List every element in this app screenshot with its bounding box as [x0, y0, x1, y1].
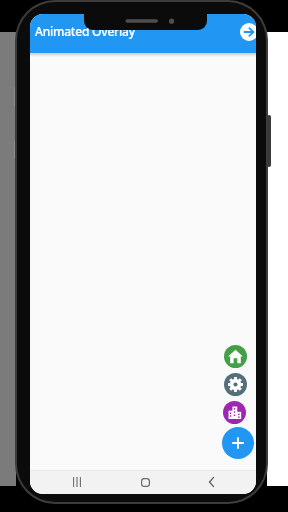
button[interactable]	[223, 401, 246, 424]
button[interactable]	[135, 472, 155, 492]
button[interactable]	[224, 373, 247, 396]
button[interactable]	[67, 472, 87, 492]
staticText: Animated Overlay	[35, 23, 135, 39]
button[interactable]	[240, 23, 256, 41]
button[interactable]	[201, 472, 221, 492]
button[interactable]	[224, 345, 247, 368]
button[interactable]	[222, 427, 254, 459]
